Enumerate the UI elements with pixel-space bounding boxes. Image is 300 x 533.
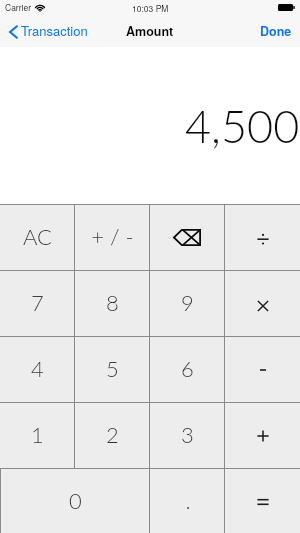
- button[interactable]: Divide: [225, 205, 300, 270]
- staticText: + / -: [91, 223, 134, 249]
- button[interactable]: Add: [225, 403, 300, 468]
- staticText: 4: [31, 355, 44, 381]
- staticText: 9: [181, 289, 194, 315]
- staticText: 5: [106, 355, 119, 381]
- staticText: Done: [260, 22, 292, 40]
- button[interactable]: 0: [0, 469, 150, 533]
- button[interactable]: Multiply: [225, 271, 300, 336]
- staticText: 0: [69, 487, 82, 513]
- staticText: 7: [31, 289, 44, 315]
- staticText: 8: [106, 289, 119, 315]
- staticText: 1: [31, 421, 44, 447]
- button[interactable]: Transaction: [0, 18, 94, 47]
- staticText: 6: [181, 355, 194, 381]
- button[interactable]: + / -: [75, 205, 150, 270]
- button[interactable]: 5: [75, 337, 150, 402]
- staticText: Carrier: [5, 1, 31, 13]
- staticText: 4,500: [185, 99, 300, 153]
- button[interactable]: 4: [0, 337, 75, 402]
- button[interactable]: AC: [0, 205, 75, 270]
- button[interactable]: Subtract: [225, 337, 300, 402]
- button[interactable]: 9: [150, 271, 225, 336]
- staticText: 3: [181, 421, 194, 447]
- button[interactable]: 8: [75, 271, 150, 336]
- button[interactable]: Delete: [150, 205, 225, 270]
- staticText: AC: [23, 223, 52, 249]
- staticText: Amount: [126, 22, 174, 40]
- button[interactable]: .: [150, 469, 225, 533]
- staticText: 10:03 PM: [132, 2, 169, 14]
- button[interactable]: 7: [0, 271, 75, 336]
- staticText: Transaction: [21, 21, 88, 40]
- button[interactable]: 2: [75, 403, 150, 468]
- button[interactable]: 1: [0, 403, 75, 468]
- button[interactable]: 3: [150, 403, 225, 468]
- staticText: .: [185, 487, 191, 513]
- button[interactable]: Equals: [225, 469, 300, 533]
- staticText: 2: [106, 421, 119, 447]
- button[interactable]: Done: [252, 18, 300, 47]
- button[interactable]: 6: [150, 337, 225, 402]
